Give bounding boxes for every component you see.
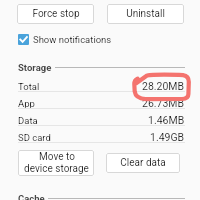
staticText: Move to xyxy=(39,151,75,163)
staticText: SD card xyxy=(18,132,51,143)
button[interactable]: Uninstall xyxy=(107,4,184,24)
staticText: Clear data xyxy=(120,157,166,169)
staticText: 28.20MB xyxy=(142,80,185,92)
staticText: App xyxy=(18,98,35,109)
button[interactable]: Total xyxy=(18,76,185,92)
staticText: 26.73MB xyxy=(142,97,185,109)
button[interactable]: Clear data xyxy=(106,153,180,173)
staticText: 1.46MB xyxy=(148,114,185,126)
staticText: Storage xyxy=(18,62,52,73)
button[interactable]: Show notifications xyxy=(18,32,200,47)
staticText: Force stop xyxy=(32,8,80,20)
button[interactable]: App xyxy=(18,93,185,109)
staticText: Uninstall xyxy=(126,8,165,20)
staticText: 1.49GB xyxy=(150,131,185,143)
other: Highlight xyxy=(0,0,200,200)
button[interactable]: Force stop xyxy=(17,4,94,24)
staticText: Cache xyxy=(18,193,45,200)
button[interactable]: SD card xyxy=(18,127,185,143)
staticText: Total xyxy=(18,81,40,92)
button[interactable]: Move to xyxy=(18,150,94,176)
button[interactable]: Data xyxy=(18,110,185,126)
staticText: Show notifications xyxy=(33,34,112,45)
staticText: Data xyxy=(18,115,38,126)
staticText: device storage xyxy=(24,163,89,175)
